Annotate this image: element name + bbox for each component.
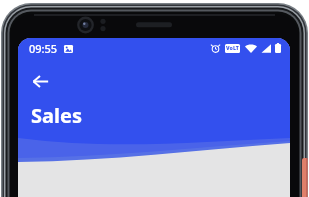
staticText: Sales (31, 102, 82, 129)
button[interactable]: Back (23, 64, 57, 98)
staticText: VoLTE (225, 44, 240, 53)
staticText: 09:55 (29, 41, 58, 56)
